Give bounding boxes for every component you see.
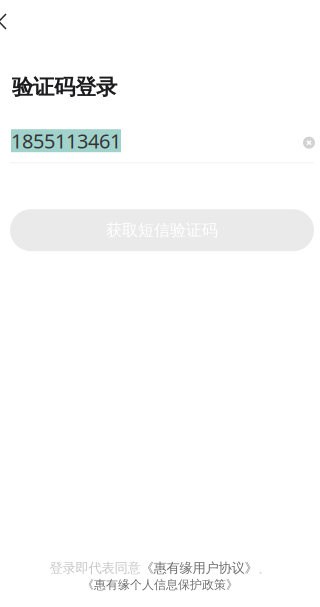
button[interactable]: Back — [0, 14, 34, 29]
staticText: 、 — [257, 560, 270, 576]
button[interactable]: Clear text — [303, 135, 315, 147]
button[interactable]: Phone number — [11, 129, 121, 152]
staticText: 获取短信验证码 — [106, 220, 218, 240]
staticText: 1855113461 — [11, 127, 121, 154]
button[interactable]: 获取短信验证码 — [10, 209, 314, 251]
staticText: 登录即代表同意 — [49, 560, 140, 576]
button[interactable]: 《惠有缘用户协议》 — [140, 560, 257, 576]
staticText: 《惠有缘用户协议》 — [140, 560, 257, 576]
staticText: 验证码登录 — [12, 74, 117, 100]
button[interactable]: 《惠有缘个人信息保护政策》 — [82, 577, 238, 592]
staticText: 《惠有缘个人信息保护政策》 — [82, 577, 238, 592]
